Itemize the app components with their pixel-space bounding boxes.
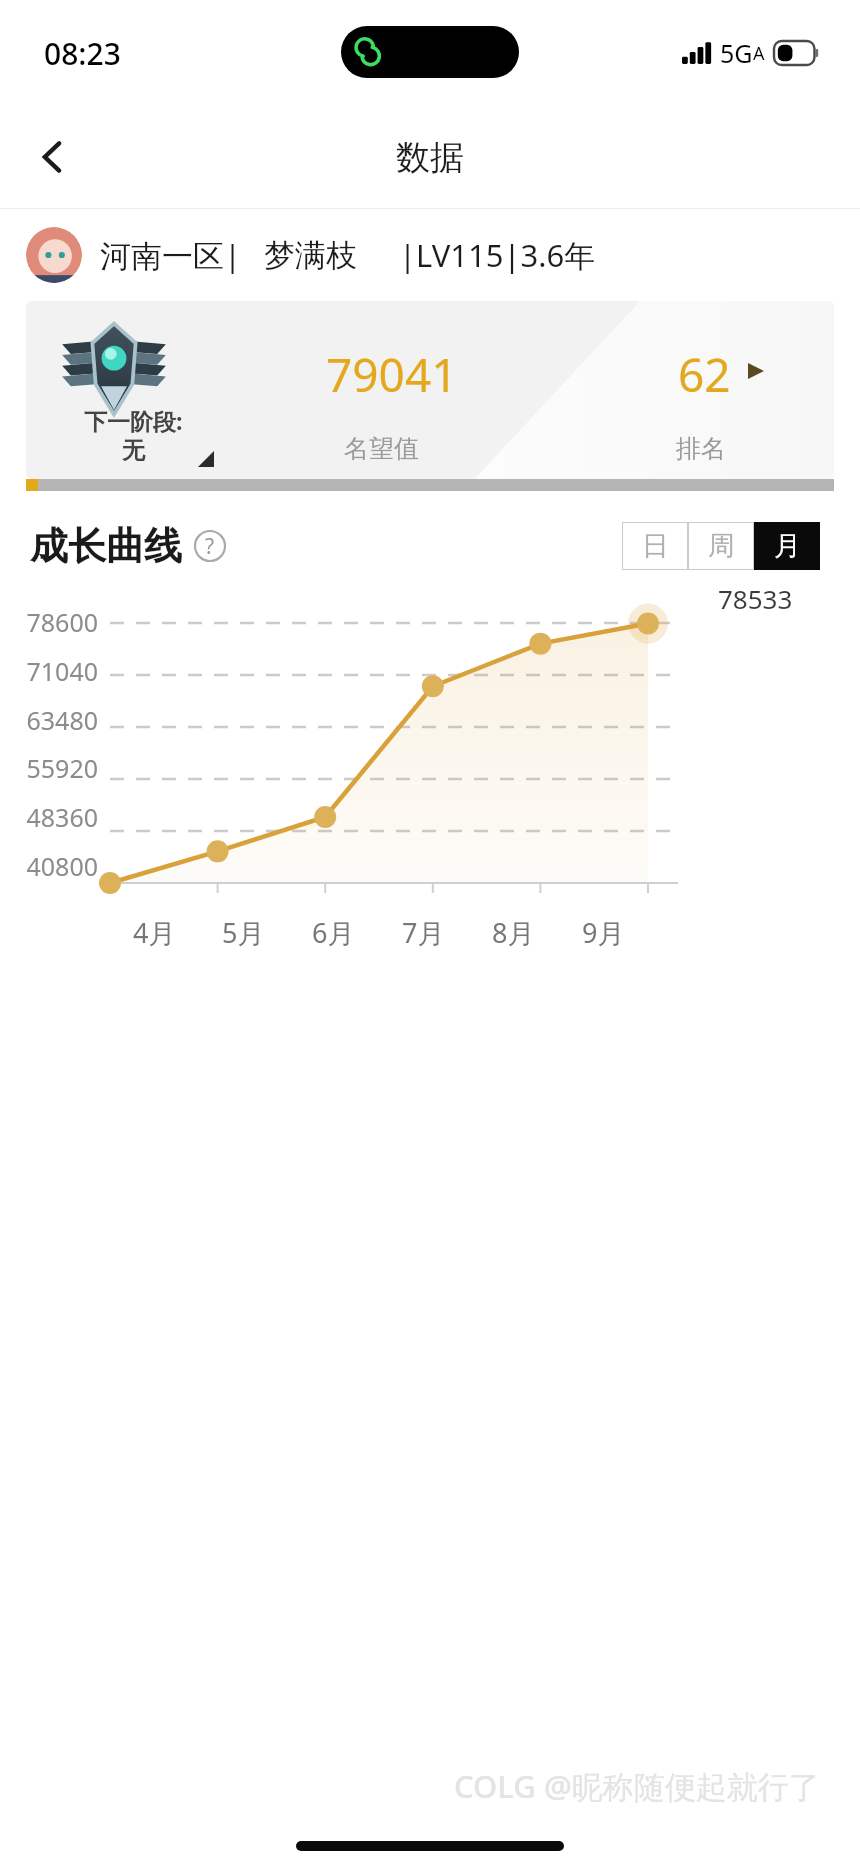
staticText: 63480 xyxy=(0,703,98,737)
button[interactable]: 月 xyxy=(754,522,820,570)
staticText: 5G xyxy=(720,36,753,70)
button[interactable]: 79041 xyxy=(26,301,834,479)
staticText: 78533 xyxy=(718,581,793,616)
button[interactable]: 日 xyxy=(622,522,688,570)
staticText: 7月 xyxy=(402,914,445,951)
staticText: 无 xyxy=(122,436,145,465)
staticText: 78600 xyxy=(0,605,98,639)
staticText: 8月 xyxy=(492,914,535,951)
staticText: 成长曲线 xyxy=(30,522,182,570)
staticText: 数据 xyxy=(396,136,464,179)
staticText: 4月 xyxy=(133,914,176,951)
button[interactable]: 周 xyxy=(688,522,754,570)
staticText: 河南一区| xyxy=(100,234,242,276)
staticText: 9月 xyxy=(582,914,625,951)
button[interactable]: 河南一区| xyxy=(0,209,860,301)
staticText: 下一阶段: xyxy=(84,405,183,436)
staticText: 日 xyxy=(642,529,669,563)
staticText: 48360 xyxy=(0,800,98,834)
staticText: 5月 xyxy=(222,914,265,951)
staticText: A xyxy=(753,41,765,66)
staticText: 排名 xyxy=(676,433,726,464)
staticText: 40800 xyxy=(0,849,98,883)
staticText: 55920 xyxy=(0,751,98,785)
staticText: COLG @昵称随便起就行了 xyxy=(454,1765,820,1807)
staticText: 6月 xyxy=(312,914,355,951)
staticText: 周 xyxy=(708,529,735,563)
staticText: |LV115|3.6年 xyxy=(399,234,596,276)
staticText: 71040 xyxy=(0,654,98,688)
staticText: 名望值 xyxy=(344,433,419,464)
staticText: 79041 xyxy=(326,343,458,406)
staticText: 08:23 xyxy=(44,33,121,74)
button[interactable]: Help xyxy=(194,530,226,562)
staticText: ? xyxy=(205,532,215,561)
staticText: 月 xyxy=(774,529,801,563)
button[interactable]: Back xyxy=(22,126,84,188)
staticText: 62 xyxy=(678,343,731,406)
staticText: 梦满枝 xyxy=(264,236,357,275)
